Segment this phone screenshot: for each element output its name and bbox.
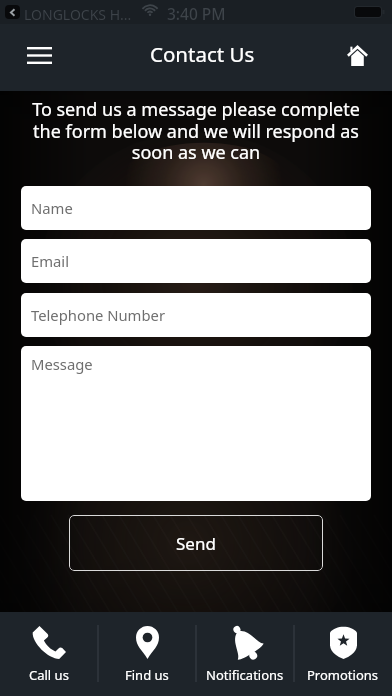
button[interactable]: Find us	[98, 612, 196, 696]
staticText: Notifications	[206, 666, 284, 684]
staticText: Find us	[125, 666, 169, 684]
button[interactable]: Notifications	[196, 612, 294, 696]
button[interactable]: Home	[331, 33, 383, 77]
staticText: Promotions	[307, 666, 379, 684]
button[interactable]: Menu	[13, 37, 65, 73]
button[interactable]: Promotions	[294, 612, 392, 696]
button[interactable]: Back	[5, 5, 20, 19]
button[interactable]: Message	[21, 346, 371, 501]
staticText: 3:40 PM	[167, 3, 226, 24]
staticText: Email	[31, 251, 69, 271]
staticText: LONGLOCKS H...	[24, 5, 132, 24]
staticText: To send us a message please complete the…	[26, 97, 366, 164]
staticText: Call us	[29, 666, 69, 684]
staticText: Message	[31, 354, 93, 374]
button[interactable]: Send	[69, 515, 323, 571]
button[interactable]: Email	[21, 239, 371, 283]
button[interactable]: Name	[21, 186, 371, 230]
staticText: Telephone Number	[31, 305, 166, 325]
button[interactable]: Telephone Number	[21, 293, 371, 337]
staticText: Name	[31, 198, 73, 218]
button[interactable]: Call us	[0, 612, 98, 696]
staticText: Send	[176, 532, 216, 555]
staticText: Contact Us	[150, 40, 255, 68]
